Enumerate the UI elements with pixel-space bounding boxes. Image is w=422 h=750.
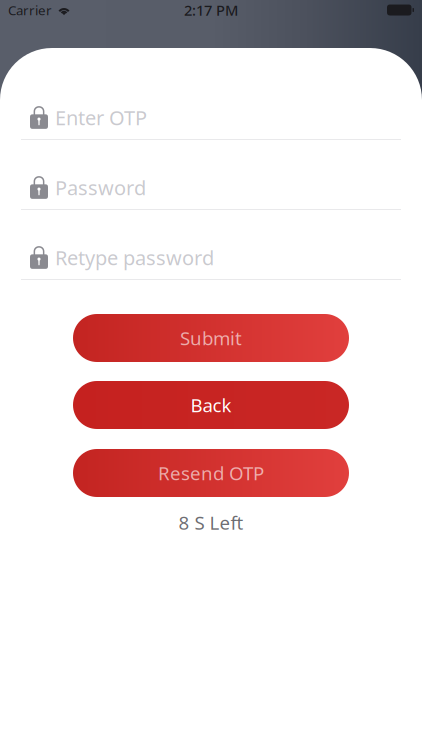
staticText: Enter OTP (55, 104, 147, 131)
button[interactable]: Resend OTP (73, 449, 349, 497)
staticText: Carrier (8, 1, 52, 19)
staticText: 2:17 PM (184, 0, 238, 20)
staticText: 8 S Left (178, 510, 243, 535)
staticText: Retype password (55, 244, 214, 271)
staticText: Back (190, 393, 231, 417)
button[interactable]: Back (73, 381, 349, 429)
button[interactable]: Submit (73, 314, 349, 362)
staticText: Resend OTP (158, 461, 264, 485)
staticText: Password (55, 174, 146, 201)
staticText: Submit (180, 326, 242, 350)
